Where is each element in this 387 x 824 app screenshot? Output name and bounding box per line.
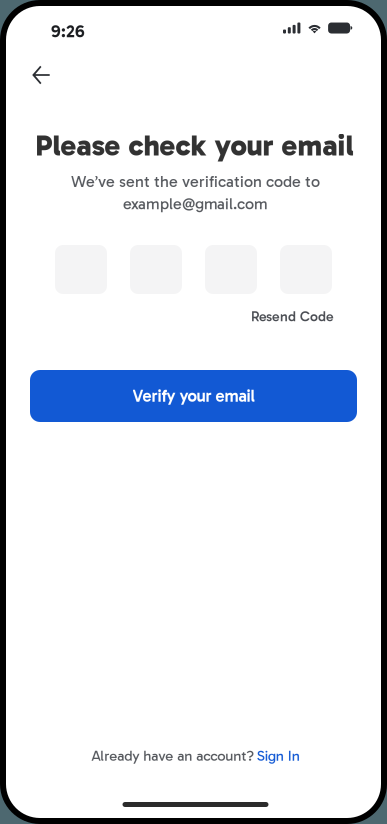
staticText: example@gmail.com <box>123 194 268 213</box>
button[interactable]: Resend Code <box>251 308 334 325</box>
staticText: Sign In <box>257 747 300 765</box>
staticText: Please check your email <box>35 128 353 163</box>
staticText: Verify your email <box>132 386 254 406</box>
staticText: Already have an account? <box>91 747 254 765</box>
button[interactable]: Verify your email <box>30 370 357 422</box>
staticText: 9:26 <box>51 21 85 42</box>
staticText: Resend Code <box>251 308 334 325</box>
staticText: We’ve sent the verification code to <box>71 172 320 191</box>
button[interactable]: Back <box>24 59 58 91</box>
button[interactable]: Sign In <box>257 747 300 765</box>
